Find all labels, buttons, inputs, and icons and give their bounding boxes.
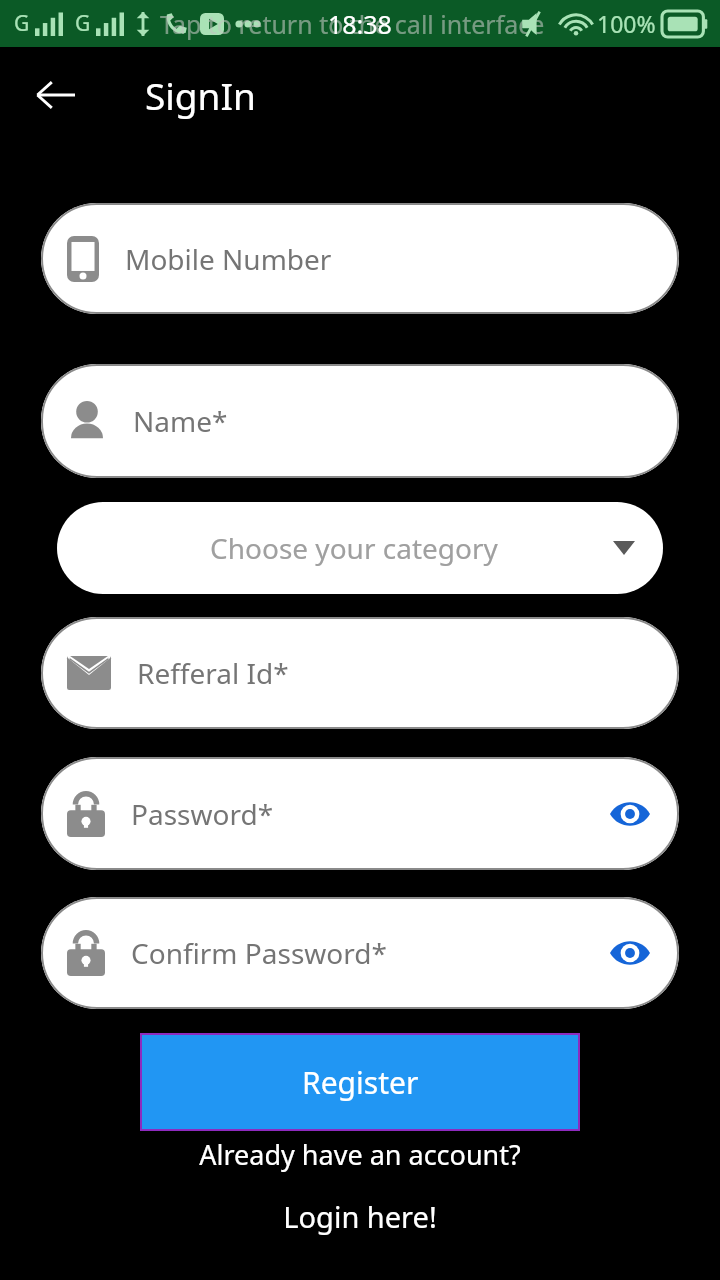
button[interactable]: Password*: [41, 757, 679, 870]
staticText: G: [75, 9, 91, 38]
button[interactable]: Login here!: [0, 1197, 720, 1236]
button[interactable]: Name*: [41, 364, 679, 478]
staticText: Already have an account?: [0, 1136, 720, 1173]
button[interactable]: Show password: [607, 930, 653, 976]
staticText: Password*: [131, 795, 607, 833]
staticText: 18:38: [328, 7, 392, 41]
button[interactable]: Choose your category: [57, 502, 663, 594]
button[interactable]: Mobile Number: [41, 203, 679, 314]
staticText: SignIn: [145, 70, 256, 120]
staticText: Register: [302, 1062, 419, 1103]
button[interactable]: Refferal Id*: [41, 617, 679, 729]
staticText: Login here!: [0, 1197, 720, 1236]
staticText: G: [14, 9, 30, 38]
button[interactable]: Register: [140, 1033, 580, 1131]
staticText: Choose your category: [210, 529, 498, 567]
staticText: Name*: [133, 402, 653, 440]
staticText: Refferal Id*: [137, 654, 653, 692]
staticText: Confirm Password*: [131, 934, 607, 972]
staticText: Tap to return to the call interface: [160, 7, 545, 41]
staticText: 100%: [597, 8, 656, 39]
button[interactable]: Back: [22, 62, 88, 128]
staticText: Mobile Number: [125, 240, 653, 278]
button[interactable]: Confirm Password*: [41, 897, 679, 1009]
button[interactable]: Show password: [607, 791, 653, 837]
